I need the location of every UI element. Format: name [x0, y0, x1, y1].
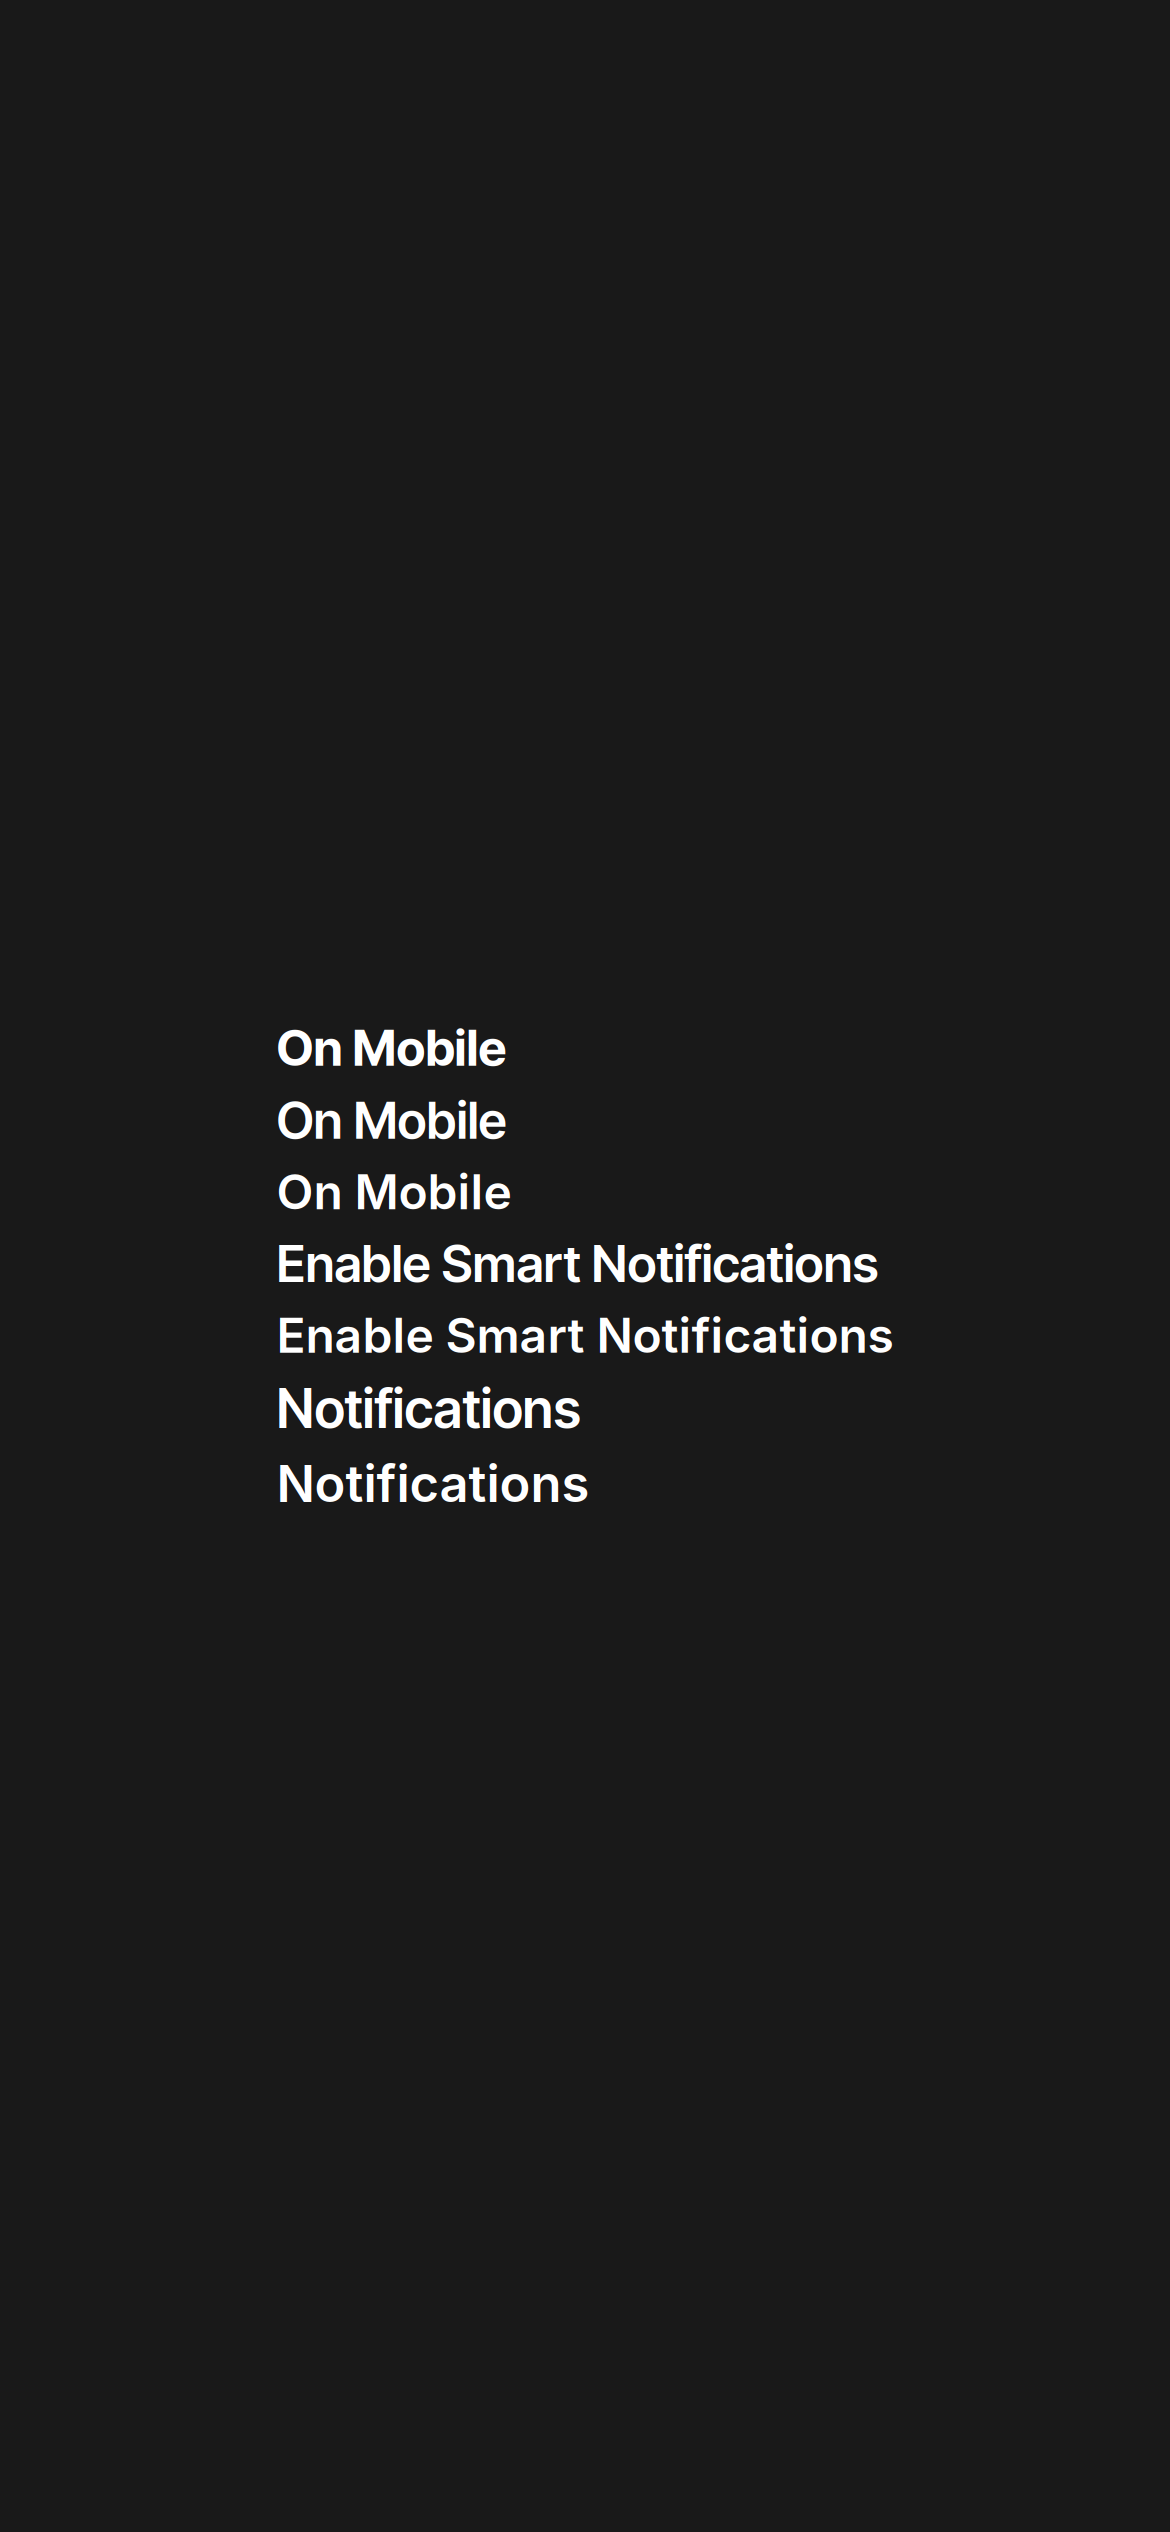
- staticText: Notifications: [276, 1453, 589, 1514]
- staticText: Notifications: [276, 1376, 580, 1441]
- staticText: On Mobile: [276, 1089, 506, 1151]
- staticText: On Mobile: [276, 1018, 506, 1078]
- staticText: On Mobile: [276, 1163, 511, 1221]
- staticText: Enable Smart Notifications: [276, 1233, 878, 1294]
- staticText: Enable Smart Notifications: [276, 1306, 893, 1364]
